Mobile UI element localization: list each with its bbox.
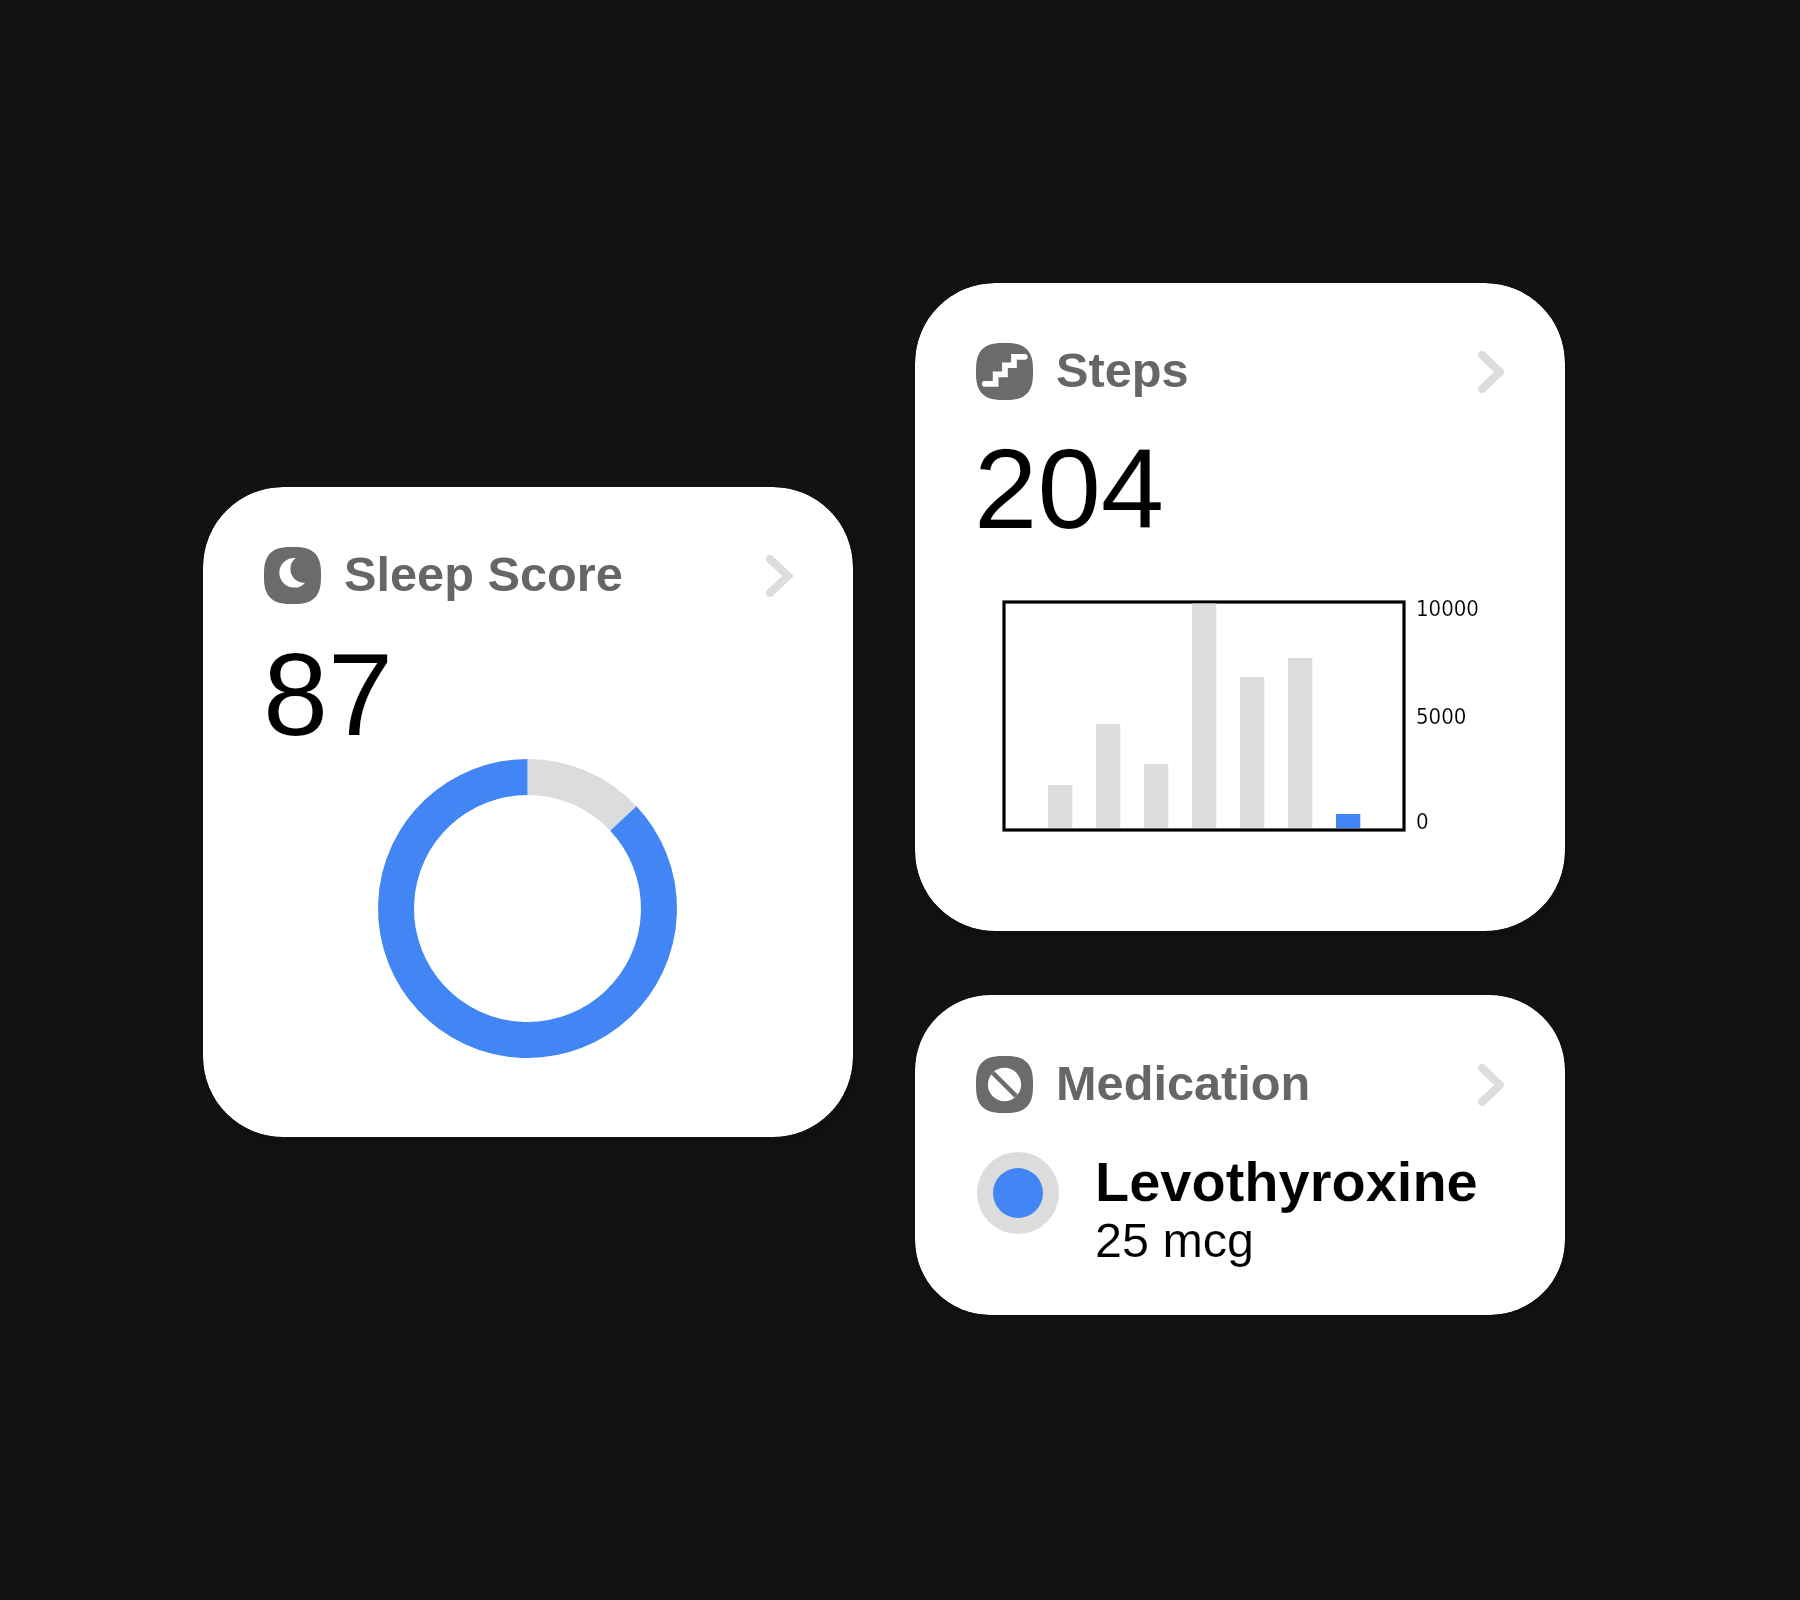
button[interactable]: Levothyroxine [977,1145,1505,1227]
staticText: Steps [1056,343,1189,397]
button[interactable]: Steps [915,283,1565,931]
button[interactable]: Open steps details [1478,351,1504,393]
staticText: 5000 [1416,704,1467,730]
button[interactable]: Medication [915,995,1565,1315]
button[interactable]: Open medication details [1478,1064,1504,1106]
button[interactable]: Sleep Score [203,487,853,1137]
staticText: Levothyroxine [1095,1150,1478,1213]
staticText: 25 mcg [1095,1213,1255,1267]
staticText: Sleep Score [344,547,623,601]
button[interactable]: Open sleep score details [766,555,792,597]
staticText: 87 [263,629,394,760]
staticText: 0 [1416,809,1429,835]
staticText: 10000 [1416,596,1479,622]
staticText: 204 [974,425,1165,552]
staticText: Medication [1056,1056,1311,1110]
